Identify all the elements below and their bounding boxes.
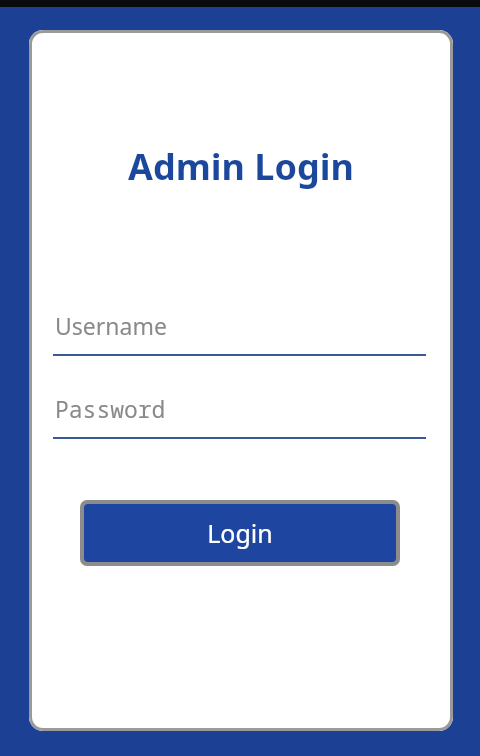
button[interactable]: Password: [53, 383, 426, 439]
staticText: Username: [55, 310, 167, 341]
button[interactable]: Login: [84, 504, 396, 562]
staticText: Login: [207, 516, 273, 550]
staticText: Admin Login: [128, 142, 354, 191]
staticText: Password: [55, 393, 166, 424]
button[interactable]: Username: [53, 300, 426, 356]
